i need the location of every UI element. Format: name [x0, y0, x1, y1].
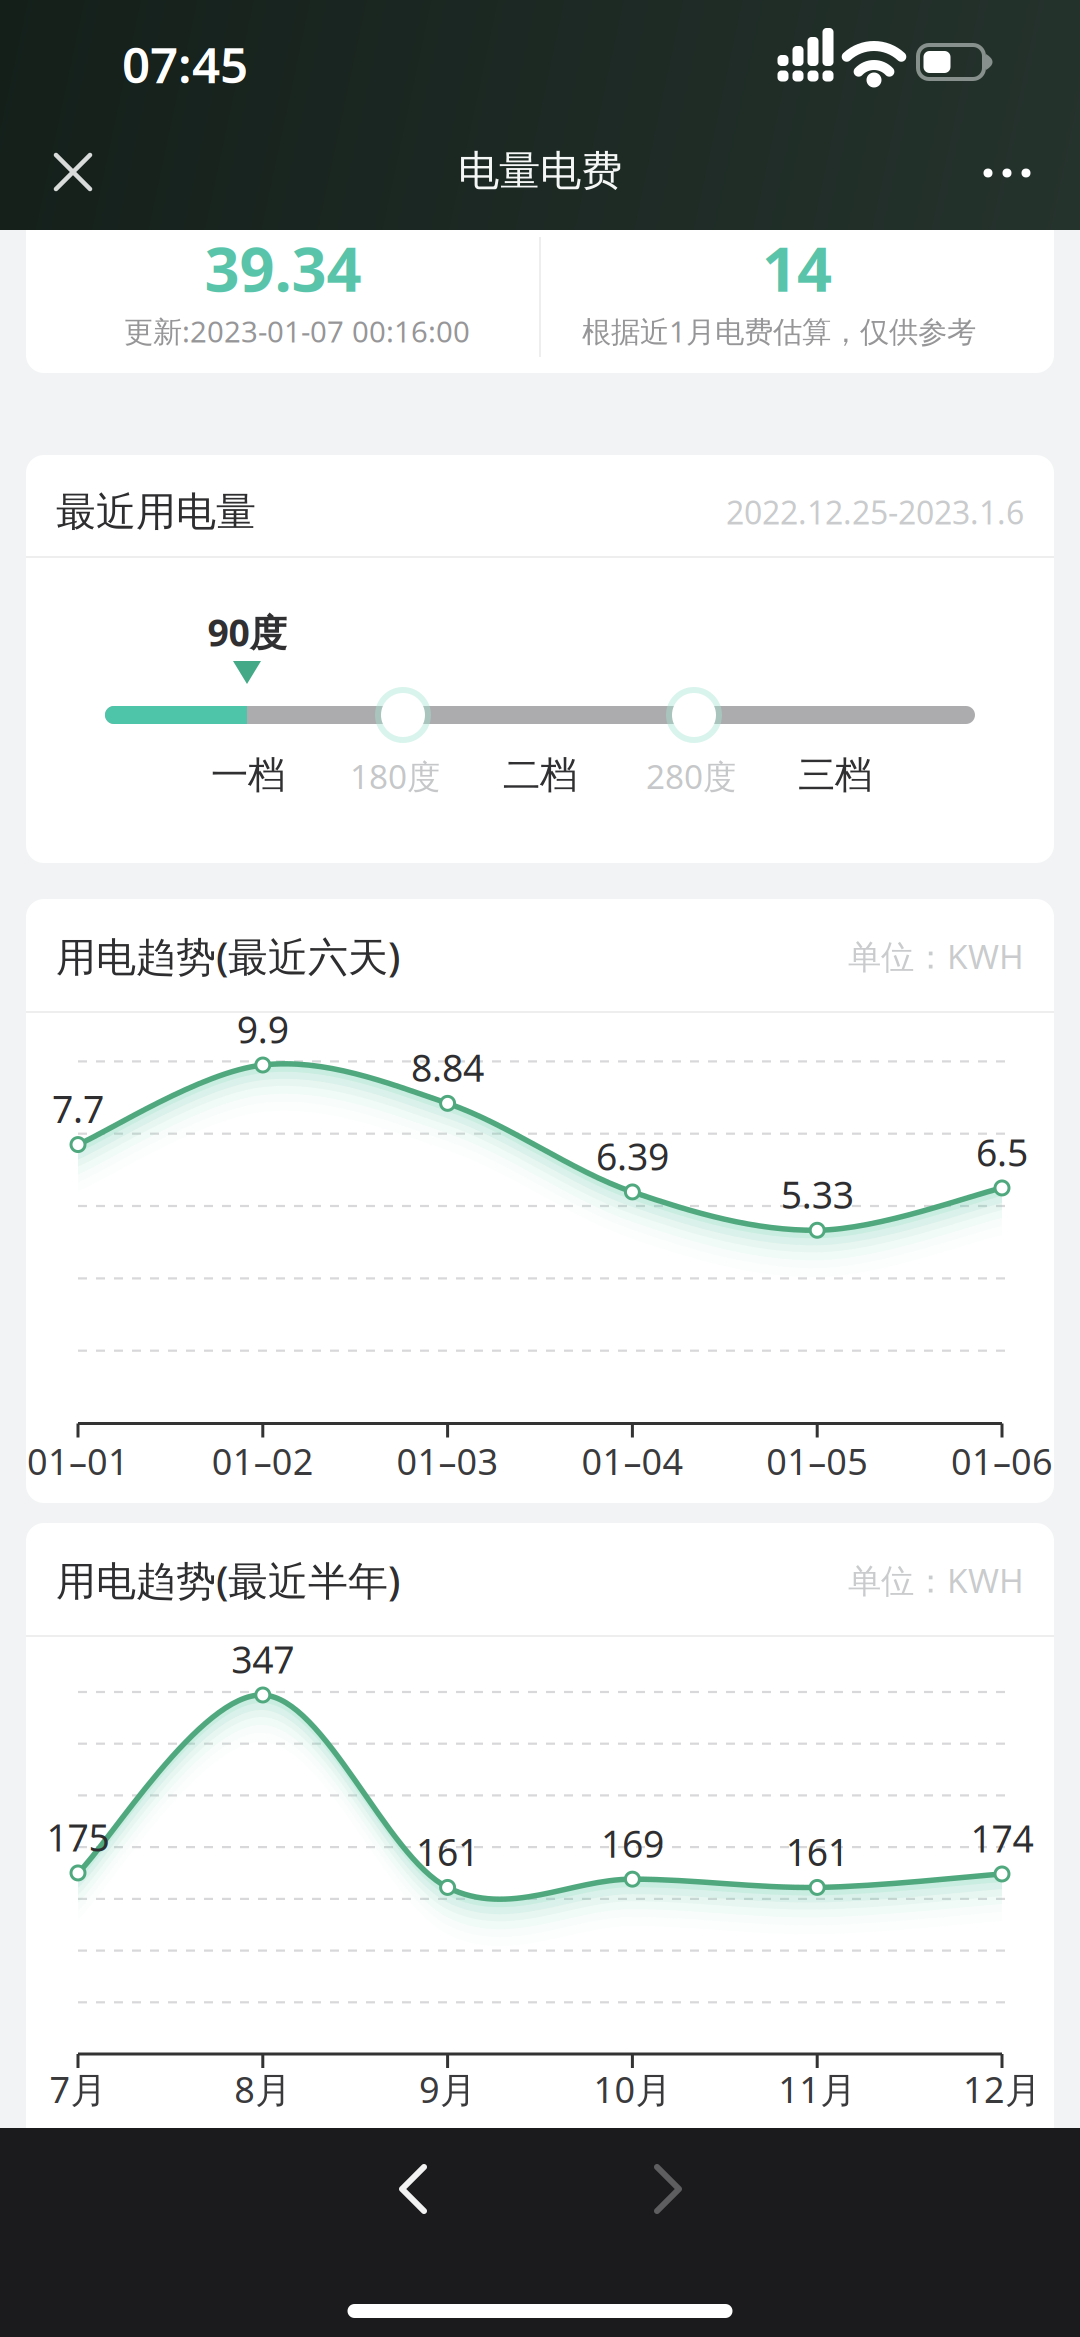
staticText: 174: [970, 1813, 1033, 1863]
button[interactable]: Forward: [633, 2159, 703, 2219]
staticText: 7月: [49, 2065, 106, 2113]
staticText: 二档: [503, 752, 577, 798]
button[interactable]: More: [967, 143, 1047, 203]
staticText: 9.9: [237, 1004, 289, 1054]
button[interactable]: 180度: [375, 687, 431, 743]
button[interactable]: Back: [378, 2159, 448, 2219]
staticText: 01–02: [212, 1437, 314, 1485]
staticText: 根据近1月电费估算，仅供参考: [582, 311, 976, 350]
staticText: 161: [416, 1827, 479, 1876]
staticText: 更新:2023-01-07 00:16:00: [124, 311, 470, 350]
staticText: 161: [786, 1827, 849, 1876]
staticText: 280度: [646, 754, 736, 798]
staticText: 2022.12.25-2023.1.6: [726, 491, 1024, 533]
staticText: 用电趋势(最近六天): [56, 929, 400, 982]
staticText: 单位：KWH: [848, 934, 1024, 978]
staticText: 14: [762, 227, 832, 309]
staticText: 用电趋势(最近半年): [56, 1553, 400, 1606]
staticText: 347: [231, 1634, 294, 1684]
staticText: 01–03: [397, 1437, 499, 1485]
staticText: 电量电费: [458, 146, 622, 196]
staticText: 最近用电量: [56, 487, 256, 536]
staticText: 7.7: [52, 1084, 104, 1133]
staticText: 5.33: [781, 1169, 854, 1219]
staticText: 175: [46, 1812, 109, 1862]
staticText: 169: [601, 1818, 664, 1868]
staticText: 12月: [963, 2065, 1041, 2113]
staticText: 180度: [350, 754, 440, 798]
staticText: 9月: [419, 2065, 476, 2113]
staticText: 8.84: [411, 1043, 484, 1092]
staticText: 90度: [207, 607, 286, 657]
staticText: 11月: [778, 2065, 856, 2113]
staticText: 10月: [593, 2065, 671, 2113]
button[interactable]: 280度: [666, 687, 722, 743]
button[interactable]: Close: [33, 132, 113, 212]
staticText: 07:45: [122, 31, 248, 97]
staticText: 01–01: [27, 1437, 129, 1485]
staticText: 8月: [234, 2065, 291, 2113]
staticText: 一档: [211, 752, 285, 798]
staticText: 01–06: [951, 1437, 1053, 1485]
staticText: 三档: [798, 752, 872, 798]
staticText: 6.5: [976, 1127, 1028, 1177]
staticText: 39.34: [204, 227, 361, 309]
staticText: 01–04: [581, 1437, 683, 1485]
staticText: 01–05: [766, 1437, 868, 1485]
staticText: 单位：KWH: [848, 1558, 1024, 1602]
staticText: 6.39: [596, 1131, 669, 1181]
